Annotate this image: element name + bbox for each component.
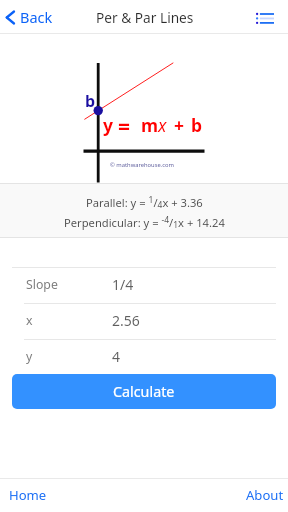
button[interactable]: Slope	[0, 268, 288, 303]
staticText: x	[26, 312, 33, 329]
staticText: 2.56	[112, 311, 140, 330]
staticText: Per & Par Lines	[96, 8, 194, 27]
button[interactable]: Back	[0, 0, 63, 34]
button[interactable]: x	[0, 304, 288, 339]
staticText: Perpendicular: y = -4/1x + 14.24	[64, 214, 225, 231]
staticText: Parallel: y = 1/4x + 3.36	[86, 194, 203, 211]
staticText: y	[26, 348, 33, 365]
staticText: © mathwarehouse.com	[110, 161, 175, 169]
staticText: 4	[112, 347, 121, 366]
staticText: mx	[141, 113, 167, 137]
staticText: b	[191, 113, 203, 137]
staticText: Calculate	[113, 382, 175, 401]
button[interactable]: Calculate	[12, 374, 276, 409]
button[interactable]: y	[0, 340, 288, 375]
staticText: =	[118, 112, 131, 141]
staticText: Slope	[26, 276, 58, 293]
button[interactable]: Menu	[245, 0, 288, 34]
staticText: +	[174, 113, 185, 137]
staticText: Home	[9, 486, 47, 504]
staticText: Back	[20, 7, 53, 27]
staticText: 1/4	[112, 275, 134, 294]
staticText: b	[85, 90, 96, 112]
staticText: y	[103, 113, 113, 137]
button[interactable]: Home	[0, 486, 54, 506]
button[interactable]: About	[239, 486, 288, 506]
staticText: About	[246, 486, 284, 504]
